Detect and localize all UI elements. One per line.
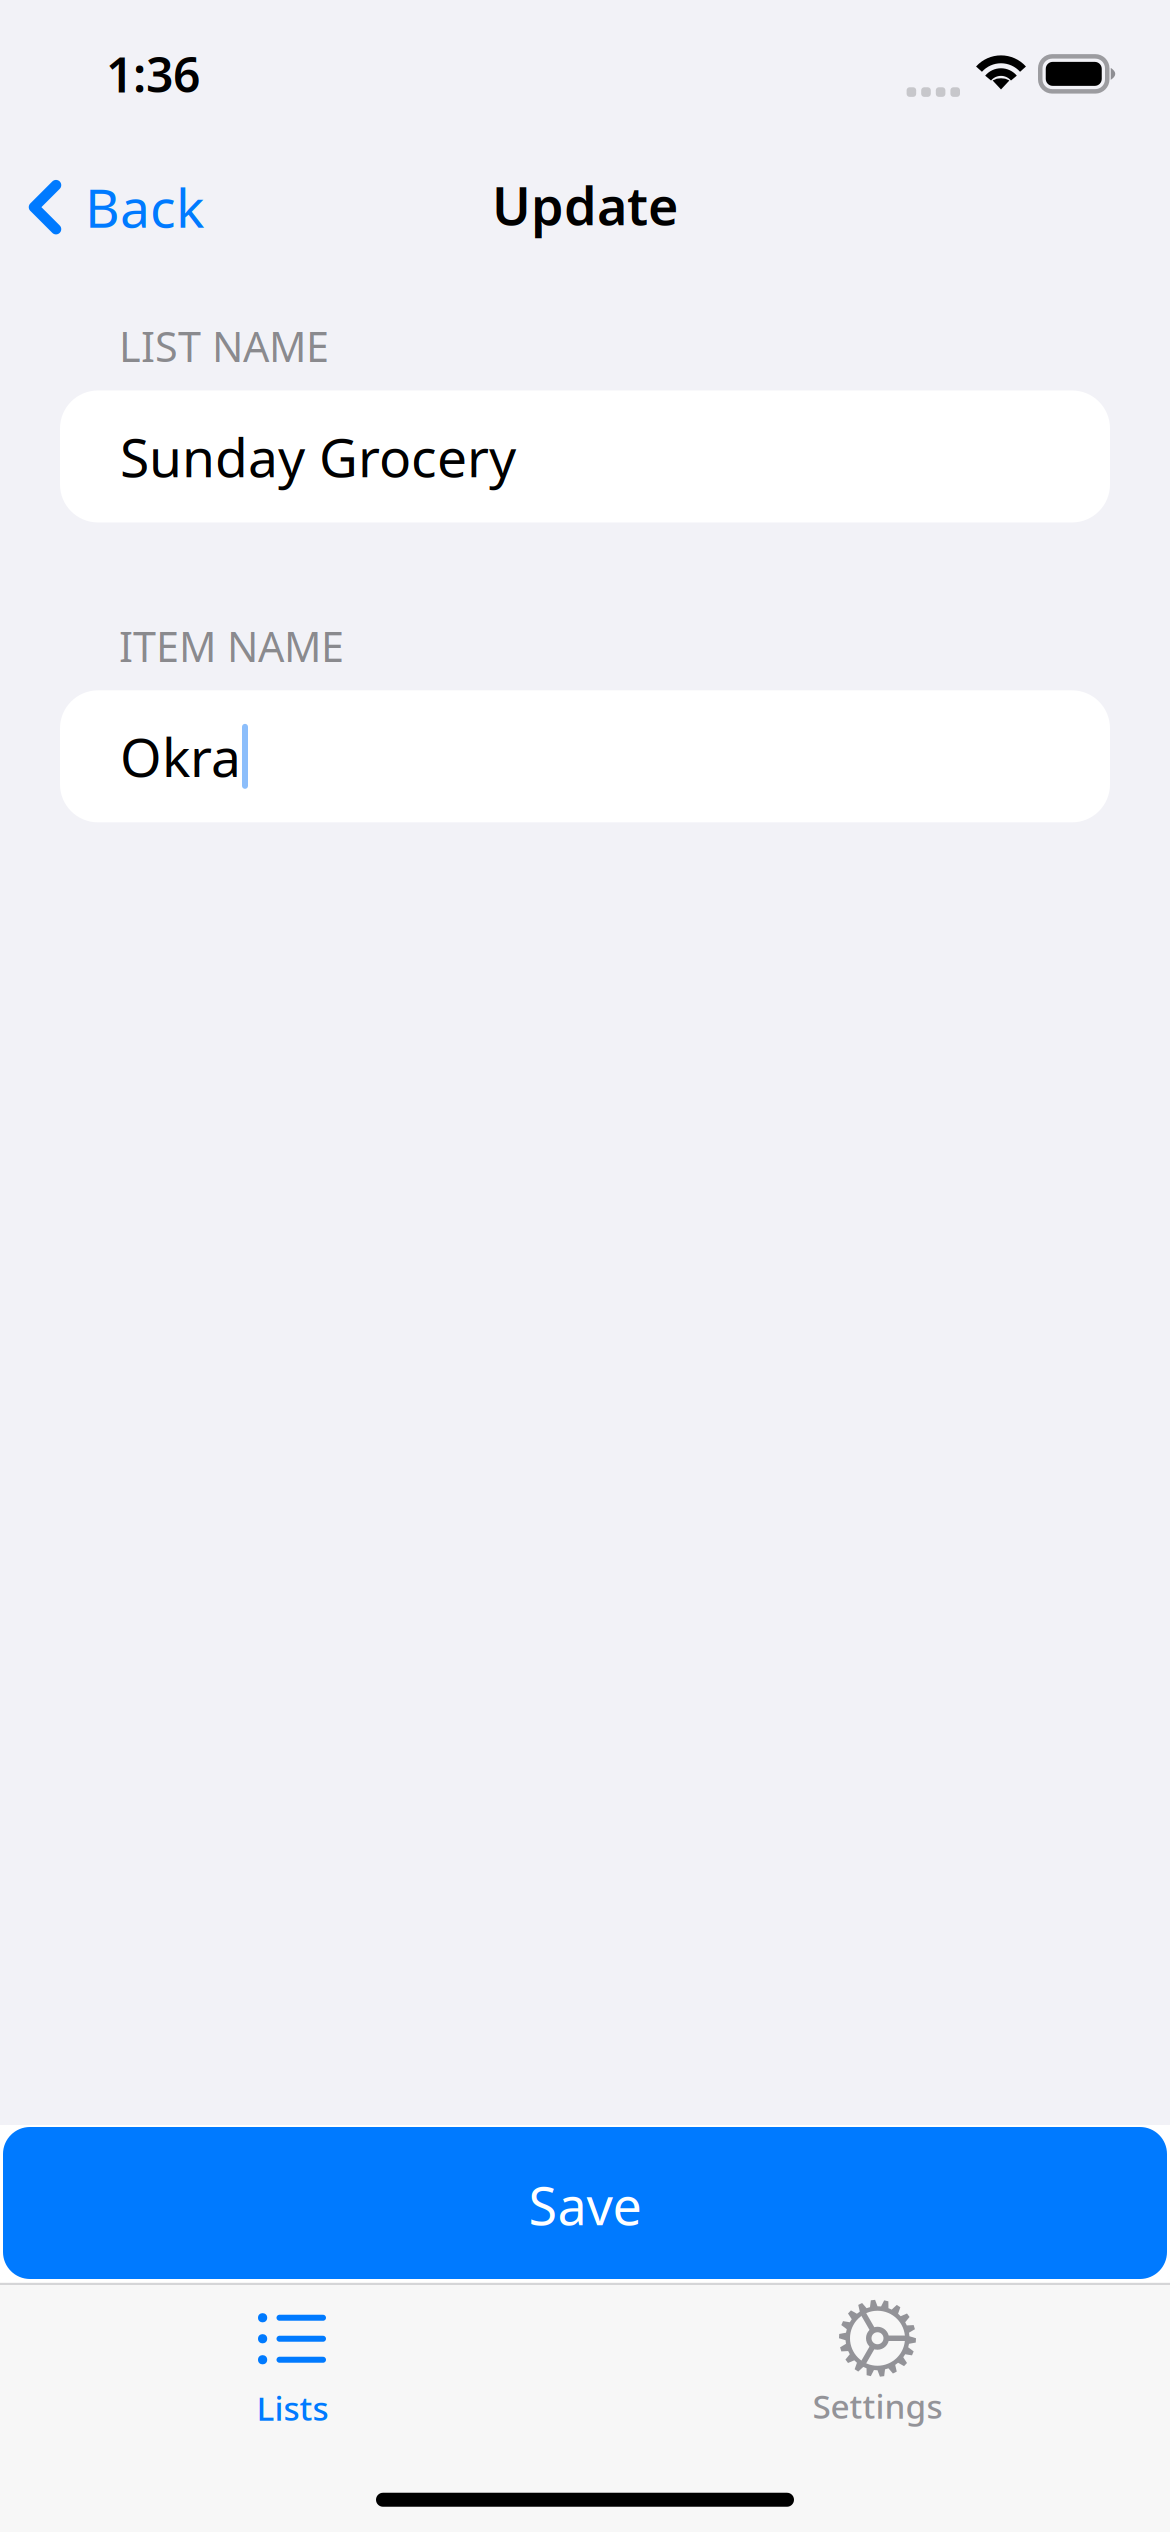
button[interactable]: Save <box>0 2125 1170 2282</box>
button[interactable]: Settings <box>585 2285 1170 2466</box>
staticText: Sunday Grocery <box>120 421 516 492</box>
staticText: Back <box>85 172 204 242</box>
staticText: Update <box>492 171 678 240</box>
staticText: ITEM NAME <box>119 618 344 673</box>
staticText: Save <box>528 2170 641 2240</box>
button[interactable]: Sunday Grocery <box>0 373 1170 522</box>
staticText: 1:36 <box>106 42 200 106</box>
button[interactable]: Lists <box>0 2285 585 2466</box>
staticText: Okra <box>120 721 241 792</box>
staticText: LIST NAME <box>119 319 329 373</box>
staticText: Settings <box>812 2384 942 2428</box>
button[interactable]: Back <box>0 158 232 256</box>
staticText: Lists <box>256 2386 328 2430</box>
button[interactable]: Okra <box>0 673 1170 822</box>
